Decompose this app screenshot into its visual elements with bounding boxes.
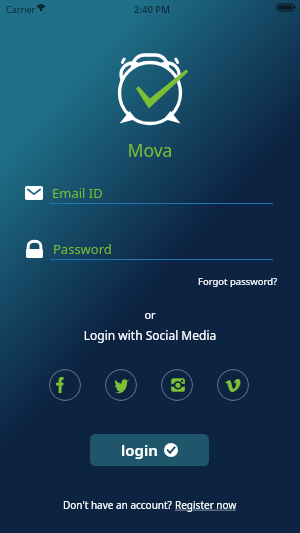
- staticText: Email ID: [52, 184, 103, 202]
- button[interactable]: Sign in with Instagram: [161, 369, 193, 401]
- staticText: 2:40 PM: [134, 3, 170, 16]
- button[interactable]: Forgot password?: [192, 271, 284, 292]
- button[interactable]: Register now: [175, 498, 237, 512]
- staticText: Don't have an account?: [63, 498, 175, 512]
- staticText: Register now: [175, 498, 237, 512]
- button[interactable]: login: [90, 434, 209, 466]
- button[interactable]: Sign in with Vimeo: [217, 369, 249, 401]
- button[interactable]: Sign in with Facebook: [49, 369, 81, 401]
- staticText: Login with Social Media: [0, 327, 300, 343]
- staticText: Mova: [0, 138, 300, 162]
- button[interactable]: [0, 234, 300, 262]
- staticText: Password: [53, 240, 112, 258]
- button[interactable]: Sign in with Twitter: [105, 369, 137, 401]
- staticText: Carrier: [6, 3, 36, 15]
- staticText: login: [121, 440, 158, 460]
- staticText: or: [0, 307, 300, 322]
- button[interactable]: [0, 180, 300, 206]
- staticText: Forgot password?: [198, 275, 278, 288]
